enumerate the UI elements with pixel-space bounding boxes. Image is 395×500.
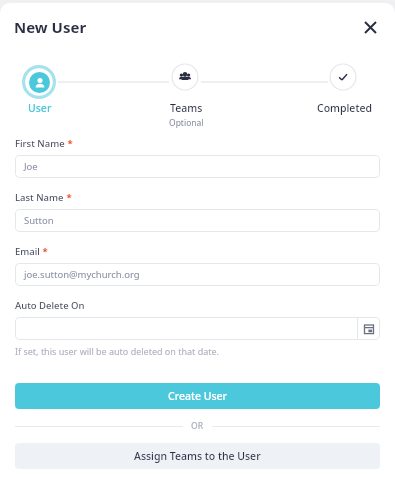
staticText: User <box>28 101 52 115</box>
button[interactable]: Completed step <box>329 63 357 91</box>
staticText: * <box>40 245 48 258</box>
staticText: Create User <box>168 389 228 403</box>
button[interactable]: Pick auto delete date <box>15 317 380 340</box>
staticText: * <box>64 191 72 204</box>
button[interactable]: Create User <box>15 383 380 409</box>
button[interactable]: Joe <box>15 155 380 178</box>
button[interactable]: User step <box>22 65 56 99</box>
button[interactable]: Teams step <box>171 63 199 91</box>
staticText: Email <box>15 245 40 258</box>
button[interactable]: Assign Teams to the User <box>15 443 380 469</box>
staticText: joe.sutton@mychurch.org <box>24 268 140 281</box>
staticText: Joe <box>24 160 38 173</box>
staticText: New User <box>14 17 87 37</box>
staticText: OR <box>191 420 204 432</box>
staticText: Sutton <box>24 214 54 227</box>
staticText: Auto Delete On <box>15 299 85 312</box>
staticText: Assign Teams to the User <box>134 449 261 463</box>
staticText: First Name <box>15 137 65 150</box>
staticText: Completed <box>317 101 372 115</box>
staticText: * <box>65 137 73 150</box>
button[interactable]: Sutton <box>15 209 380 232</box>
staticText: Teams <box>170 101 203 115</box>
staticText: Last Name <box>15 191 64 204</box>
staticText: Optional <box>169 117 204 129</box>
staticText: If set, this user will be auto deleted o… <box>15 345 219 357</box>
button[interactable]: Close <box>355 12 385 42</box>
button[interactable]: joe.sutton@mychurch.org <box>15 263 380 286</box>
